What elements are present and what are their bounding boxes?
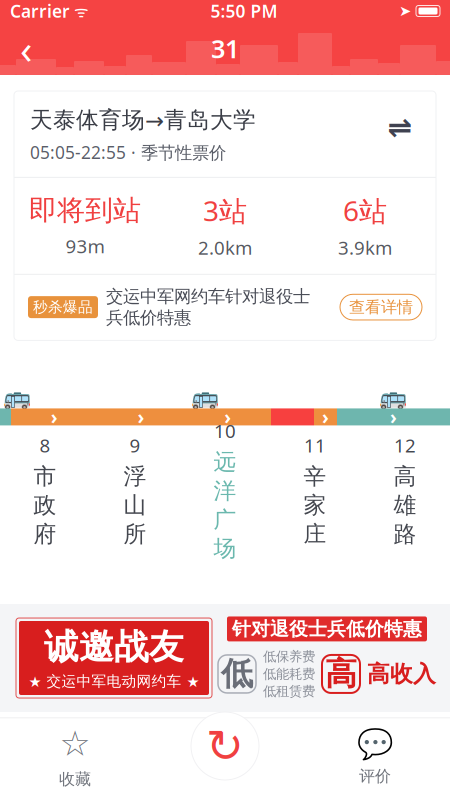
button[interactable]: 12: [360, 435, 450, 550]
staticText: 低能耗费: [263, 666, 315, 682]
staticText: 10: [214, 418, 236, 443]
staticText: 9: [129, 433, 140, 458]
staticText: 低: [221, 654, 253, 694]
staticText: 交运中军网约车针对退役士兵低价特惠: [106, 286, 310, 328]
staticText: 评价: [359, 766, 391, 786]
staticText: 府: [33, 520, 56, 548]
staticText: Carrier: [10, 0, 70, 22]
button[interactable]: 查看详情: [340, 294, 422, 320]
button[interactable]: 10: [180, 435, 270, 550]
staticText: 11: [304, 433, 326, 458]
staticText: 3.9km: [338, 235, 392, 260]
staticText: 家: [303, 491, 326, 519]
staticText: 广: [213, 506, 236, 534]
staticText: 8: [39, 433, 50, 458]
button[interactable]: ☆: [0, 718, 150, 794]
staticText: 6站: [343, 192, 387, 229]
staticText: 低保养费: [263, 648, 315, 665]
staticText: 庄: [303, 520, 326, 548]
staticText: 远: [213, 448, 236, 476]
staticText: ›: [390, 404, 397, 429]
staticText: 诚邀战友: [44, 626, 184, 668]
staticText: ☆: [59, 724, 90, 763]
button[interactable]: Advertisement: [0, 604, 450, 712]
staticText: ›: [137, 404, 144, 429]
staticText: ➤: [399, 3, 411, 19]
staticText: 🚌: [3, 384, 31, 410]
staticText: ›: [51, 404, 58, 429]
button[interactable]: 9: [90, 435, 180, 550]
staticText: 即将到站: [29, 193, 141, 228]
staticText: 天泰体育场→青岛大学: [30, 106, 256, 134]
button[interactable]: 8: [0, 435, 90, 550]
button[interactable]: 💬: [300, 718, 450, 794]
staticText: ᯤ: [70, 0, 89, 22]
staticText: ⇌: [387, 110, 412, 144]
staticText: 洋: [213, 477, 236, 505]
staticText: 查看详情: [349, 297, 413, 317]
staticText: 12: [394, 433, 416, 458]
staticText: 93m: [65, 234, 104, 258]
button[interactable]: Refresh: [191, 712, 259, 780]
staticText: 山: [123, 491, 146, 519]
staticText: 雄: [393, 491, 416, 519]
staticText: 31: [211, 32, 239, 65]
staticText: 高: [325, 654, 357, 694]
staticText: 秒杀爆品: [33, 298, 93, 316]
staticText: 💬: [356, 727, 393, 760]
staticText: 辛: [303, 462, 326, 490]
staticText: 高: [393, 462, 416, 490]
staticText: 所: [123, 520, 146, 548]
staticText: 2.0km: [198, 235, 252, 260]
staticText: 5:50 PM: [210, 0, 277, 22]
staticText: 低租赁费: [263, 683, 315, 700]
staticText: 高收入: [367, 660, 436, 688]
button[interactable]: 11: [270, 435, 360, 550]
staticText: 场: [213, 535, 236, 562]
staticText: ‹: [20, 22, 32, 75]
staticText: ›: [322, 404, 329, 429]
button[interactable]: Reverse direction: [380, 106, 420, 148]
staticText: 政: [33, 491, 56, 519]
staticText: ↻: [206, 720, 244, 772]
staticText: 市: [33, 462, 56, 490]
button[interactable]: Back: [0, 22, 52, 75]
staticText: 收藏: [59, 769, 91, 789]
staticText: 05:05-22:55 · 季节性票价: [30, 141, 226, 164]
staticText: 路: [393, 520, 416, 548]
staticText: 🚌: [379, 384, 407, 410]
staticText: 3站: [203, 192, 247, 229]
staticText: ›: [224, 404, 231, 429]
staticText: 针对退役士兵低价特惠: [232, 617, 422, 640]
staticText: ★ 交运中军电动网约车 ★: [28, 672, 199, 690]
staticText: 🚌: [191, 384, 219, 410]
staticText: 浮: [123, 462, 146, 490]
